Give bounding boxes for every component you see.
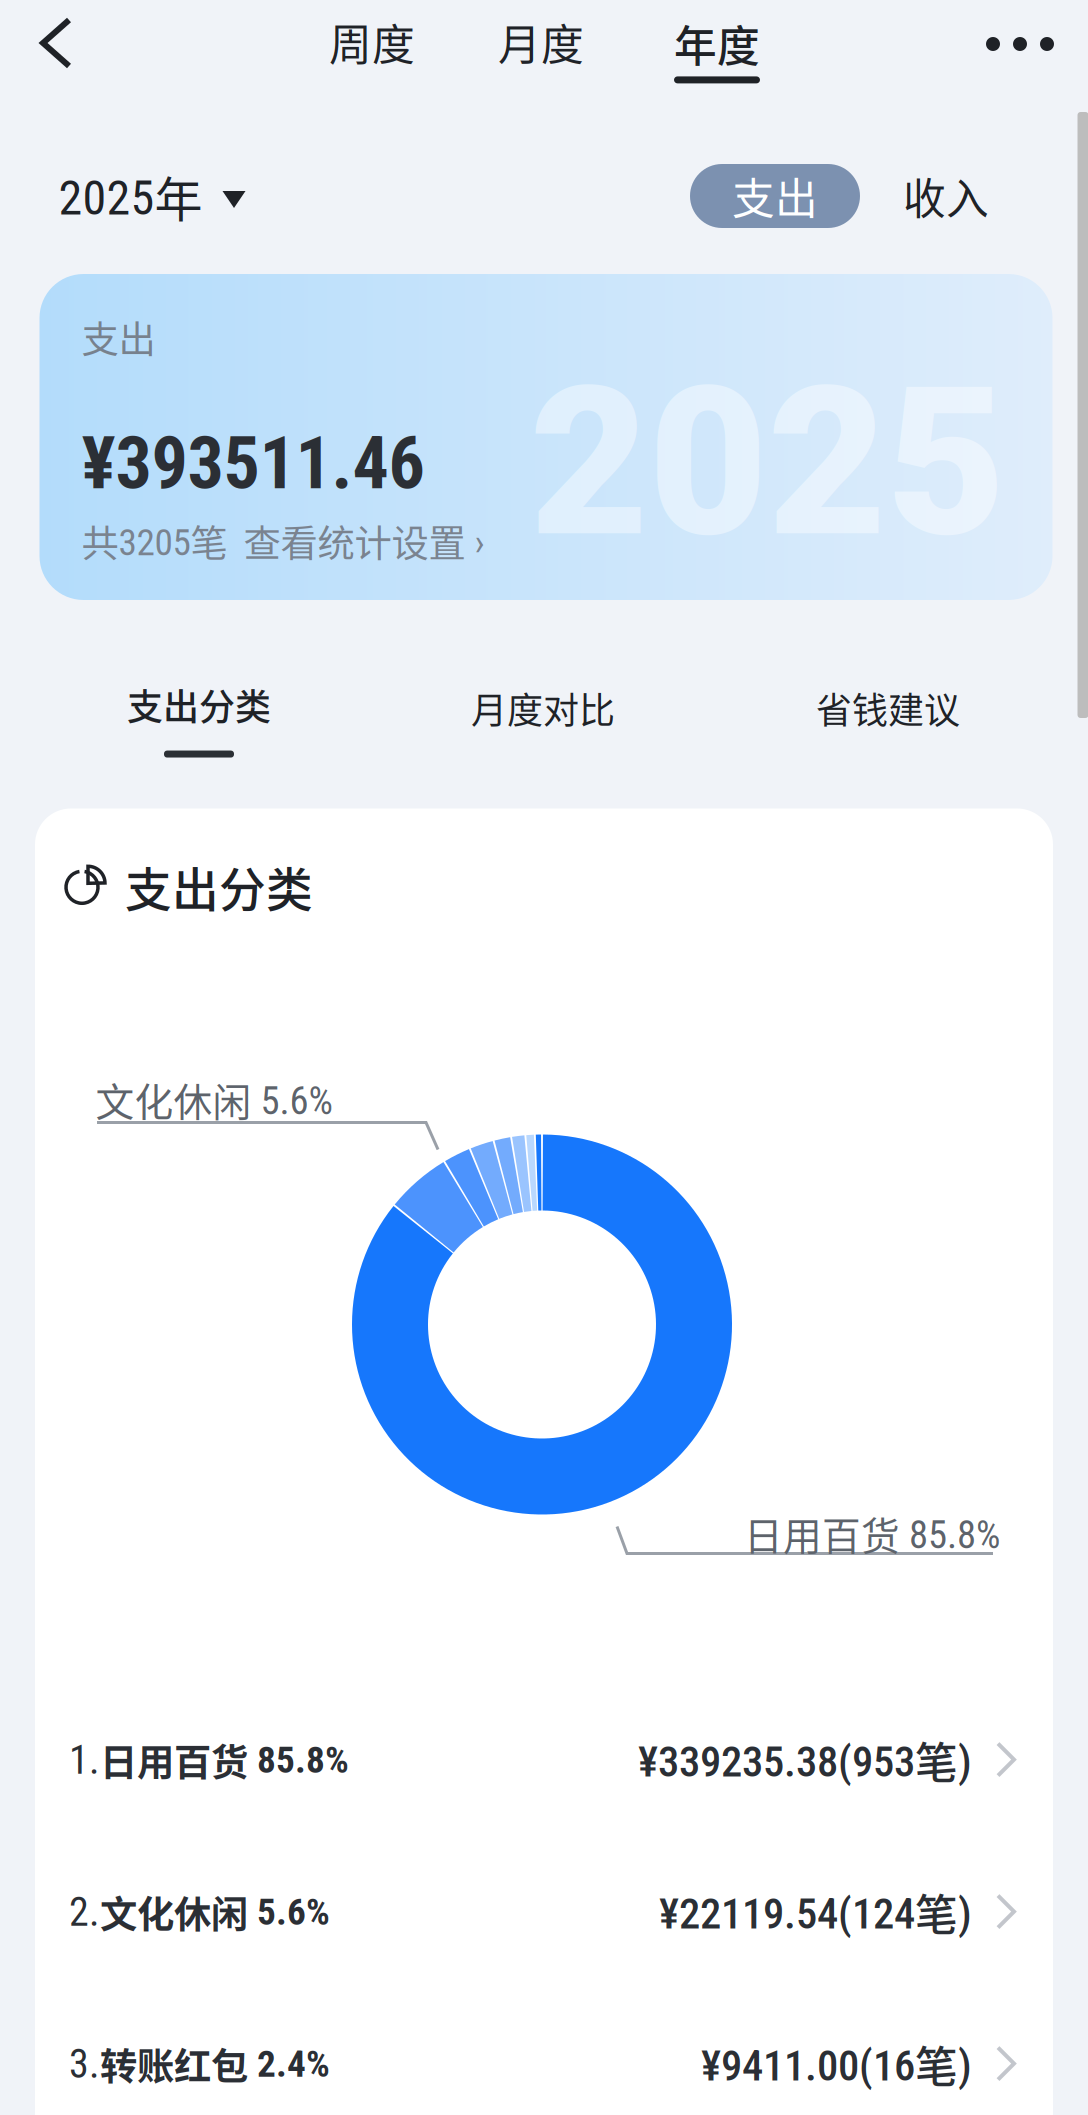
staticText: ¥393511.46 <box>81 422 424 506</box>
staticText: 年度 <box>674 13 760 74</box>
staticText: ¥22119.54(124笔) <box>659 1881 972 1943</box>
staticText: 月度 <box>498 11 584 73</box>
staticText: 日用百货 85.8% <box>744 1505 1000 1561</box>
staticText: 转账红包 <box>100 2037 248 2091</box>
staticText: 共3205笔 查看统计设置 › <box>81 514 484 568</box>
button[interactable]: More <box>965 0 1075 90</box>
staticText: 支出 <box>732 165 818 227</box>
button[interactable]: 支出分类 <box>74 658 324 778</box>
button[interactable]: 年度 <box>642 0 792 103</box>
staticText: 收入 <box>903 165 989 227</box>
staticText: ¥339235.38(953笔) <box>638 1729 972 1791</box>
staticText: 85.8% <box>248 1738 349 1782</box>
button[interactable]: 支出 <box>690 164 860 228</box>
button[interactable]: 2. <box>35 1836 1053 1988</box>
button[interactable]: 周度 <box>297 0 447 88</box>
button[interactable]: 省钱建议 <box>763 658 1013 758</box>
staticText: 支出分类 <box>125 852 313 920</box>
staticText: ¥9411.00(16笔) <box>701 2033 972 2095</box>
staticText: 文化休闲 <box>100 1885 248 1939</box>
button[interactable]: 月度对比 <box>418 658 668 758</box>
staticText: 支出分类 <box>127 678 271 730</box>
staticText: 5.6% <box>248 1890 330 1934</box>
staticText: 周度 <box>329 11 415 73</box>
button[interactable]: 收入 <box>886 160 1006 232</box>
button[interactable]: 2025年 <box>58 153 245 239</box>
button[interactable]: Back <box>11 0 101 99</box>
staticText: 2025 <box>529 343 1005 583</box>
staticText: 支出 <box>81 310 155 364</box>
button[interactable]: 1. <box>35 1684 1053 1836</box>
staticText: 1. <box>69 1737 100 1783</box>
staticText: 3. <box>69 2041 100 2087</box>
staticText: 文化休闲 5.6% <box>95 1071 332 1127</box>
button[interactable]: 月度 <box>466 0 616 88</box>
staticText: 2.4% <box>248 2042 330 2086</box>
staticText: 省钱建议 <box>816 682 960 734</box>
staticText: 2. <box>69 1889 100 1935</box>
button[interactable]: 3. <box>35 1988 1053 2115</box>
staticText: 日用百货 <box>100 1733 248 1787</box>
staticText: 月度对比 <box>471 682 615 734</box>
staticText: 2025年 <box>58 161 202 231</box>
